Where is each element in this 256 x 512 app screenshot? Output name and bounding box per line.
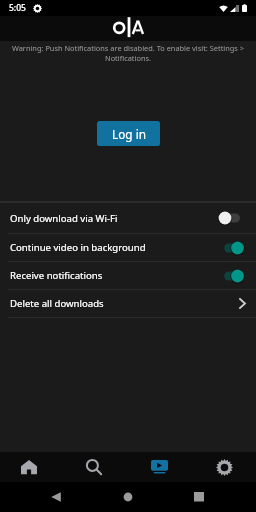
button[interactable]: Log in: [97, 121, 160, 146]
staticText: Delete all downloads: [10, 297, 104, 310]
staticText: Only download via Wi-Fi: [10, 212, 118, 225]
button[interactable]: Settings: [192, 452, 256, 482]
button[interactable]: Continue video in background: [0, 234, 256, 261]
button[interactable]: Delete all downloads: [0, 290, 256, 317]
button[interactable]: Only download via Wi-Fi: [0, 203, 256, 233]
button[interactable]: Back: [51, 492, 61, 502]
staticText: Receive notifications: [10, 269, 103, 282]
button[interactable]: Search: [64, 452, 128, 482]
staticText: Continue video in background: [10, 241, 146, 254]
staticText: Log in: [112, 126, 146, 142]
staticText: 5:05: [9, 2, 26, 14]
button[interactable]: Recents: [194, 492, 204, 502]
button[interactable]: Home: [0, 452, 64, 482]
button[interactable]: Receive notifications: [0, 262, 256, 289]
button[interactable]: Library: [128, 452, 192, 482]
staticText: Warning: Push Notifications are disabled…: [9, 43, 247, 64]
button[interactable]: Home: [123, 492, 133, 502]
